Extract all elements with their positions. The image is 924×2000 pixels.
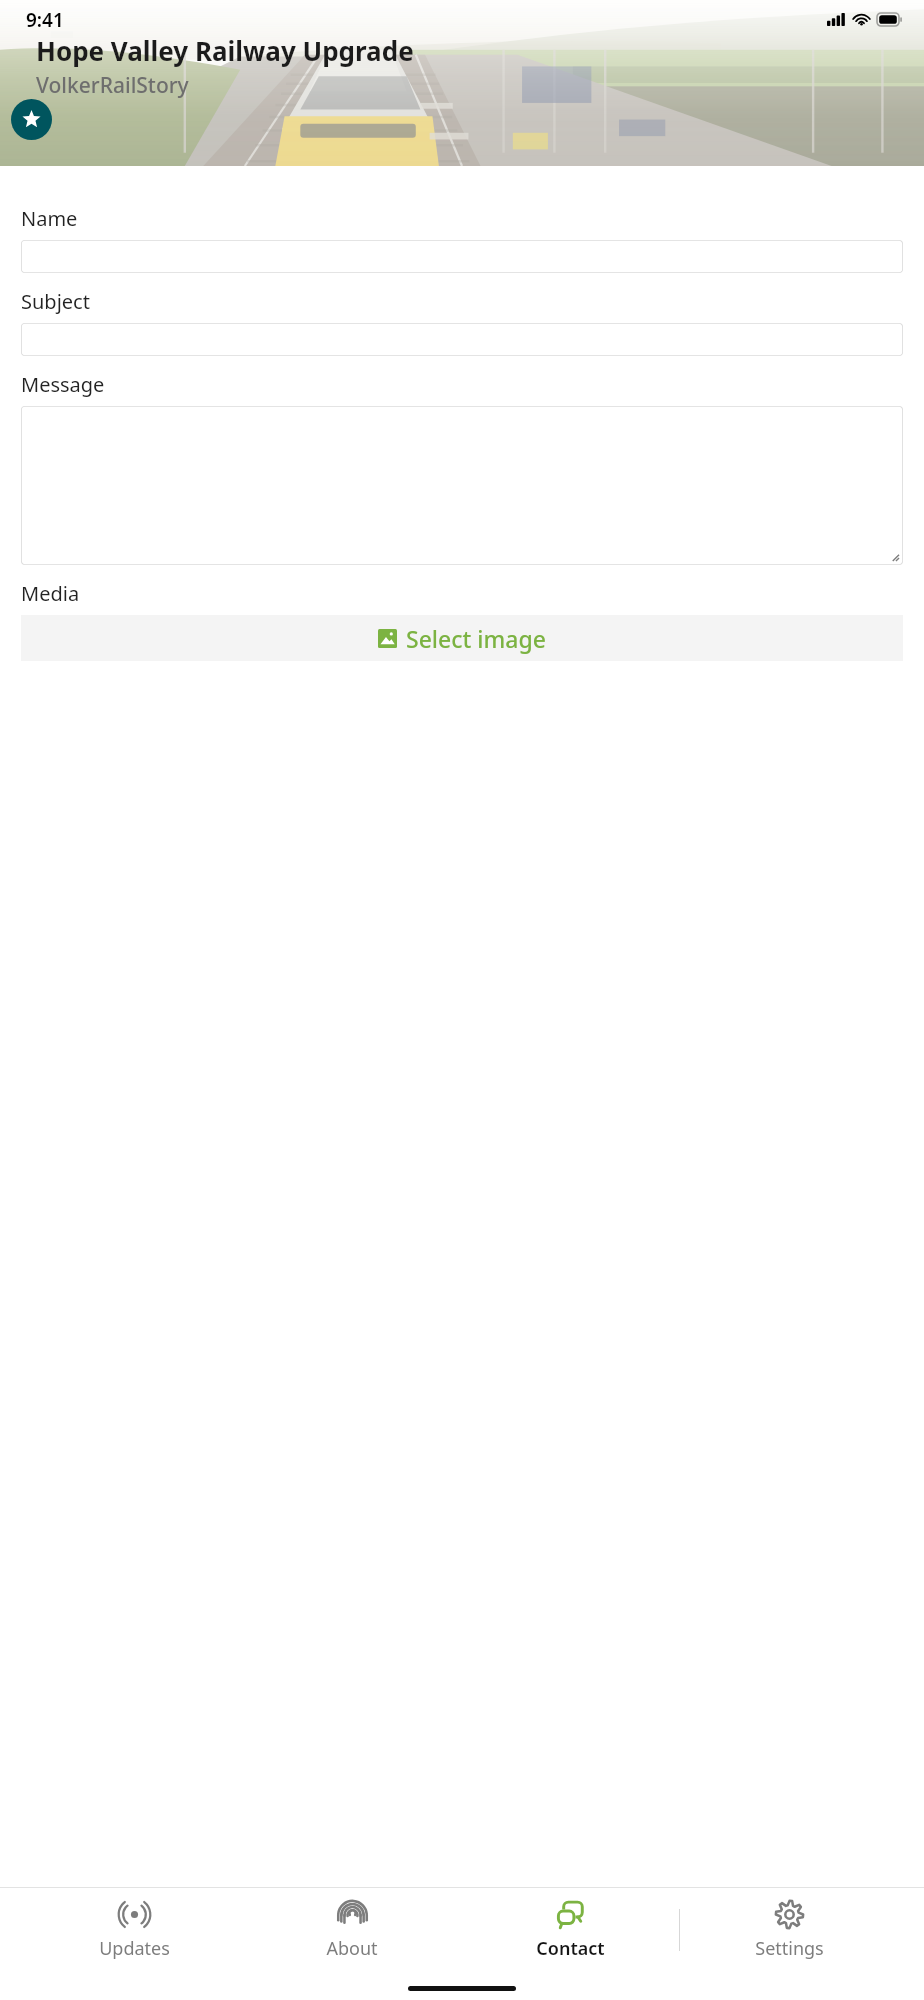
other: Settings [774, 1899, 805, 1930]
staticText: Settings [755, 1936, 824, 1961]
button[interactable]: Select image [21, 615, 903, 661]
staticText: 9:41 [26, 7, 64, 33]
staticText: Subject [21, 288, 90, 315]
staticText: VolkerRailStory [36, 71, 189, 100]
staticText: Hope Valley Railway Upgrade [36, 33, 414, 68]
staticText: Updates [99, 1936, 170, 1961]
staticText: Contact [536, 1936, 605, 1961]
button[interactable]: Favourite [11, 99, 52, 140]
staticText: Name [21, 205, 78, 232]
button[interactable]: Updates [26, 1888, 243, 1972]
staticText: About [326, 1936, 378, 1961]
other: Updates [119, 1899, 150, 1930]
staticText: Media [21, 580, 80, 607]
button[interactable] [21, 240, 903, 273]
other: About [337, 1899, 368, 1930]
button[interactable] [21, 406, 903, 565]
button[interactable] [21, 323, 903, 356]
button[interactable]: About [243, 1888, 461, 1972]
staticText: Select image [406, 623, 546, 654]
staticText: Message [21, 371, 105, 398]
other: Contact [555, 1899, 586, 1930]
button[interactable]: Contact [461, 1888, 679, 1972]
button[interactable]: Settings [680, 1888, 898, 1972]
